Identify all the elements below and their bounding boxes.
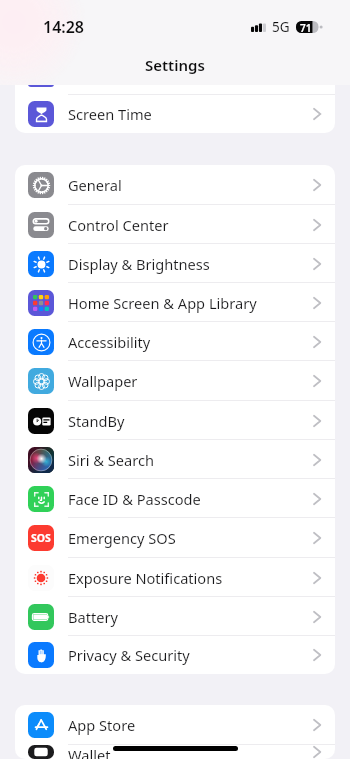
button[interactable]: App Store <box>15 705 335 745</box>
button[interactable]: Control Center <box>15 205 335 244</box>
button[interactable]: Face ID & Passcode <box>15 479 335 518</box>
button[interactable]: Home Screen & App Library <box>15 283 335 322</box>
staticText: Wallpaper <box>68 371 138 391</box>
button[interactable]: SOS <box>15 518 335 558</box>
staticText: Exposure Notifications <box>68 568 223 588</box>
staticText: Emergency SOS <box>68 528 176 548</box>
staticText: Home Screen & App Library <box>68 293 257 313</box>
staticText: Control Center <box>68 215 169 235</box>
staticText: App Store <box>68 715 136 735</box>
button[interactable]: Wallet <box>15 745 335 759</box>
button[interactable]: Exposure Notifications <box>15 558 335 597</box>
button[interactable]: Display & Brightness <box>15 244 335 283</box>
staticText: Display & Brightness <box>68 254 210 274</box>
button[interactable]: Siri & Search <box>15 440 335 479</box>
button[interactable]: Battery <box>15 597 335 636</box>
staticText: 14:28 <box>43 16 85 38</box>
staticText: 5G <box>272 18 290 36</box>
staticText: 71 <box>300 21 312 32</box>
staticText: Screen Time <box>68 104 152 124</box>
staticText: Battery <box>68 607 118 627</box>
staticText: StandBy <box>68 411 125 431</box>
staticText: Wallet <box>68 745 111 759</box>
staticText: Accessibility <box>68 332 151 352</box>
button[interactable]: StandBy <box>15 401 335 440</box>
staticText: General <box>68 175 122 195</box>
button[interactable]: Wallpaper <box>15 361 335 401</box>
staticText: Settings <box>145 55 205 75</box>
button[interactable]: Privacy & Security <box>15 636 335 674</box>
staticText: Privacy & Security <box>68 645 190 665</box>
button[interactable]: General <box>15 165 335 205</box>
staticText: SOS <box>31 531 51 545</box>
staticText: Siri & Search <box>68 450 155 470</box>
button[interactable]: Accessibility <box>15 322 335 361</box>
button[interactable]: Screen Time <box>15 94 335 133</box>
staticText: Face ID & Passcode <box>68 489 201 509</box>
